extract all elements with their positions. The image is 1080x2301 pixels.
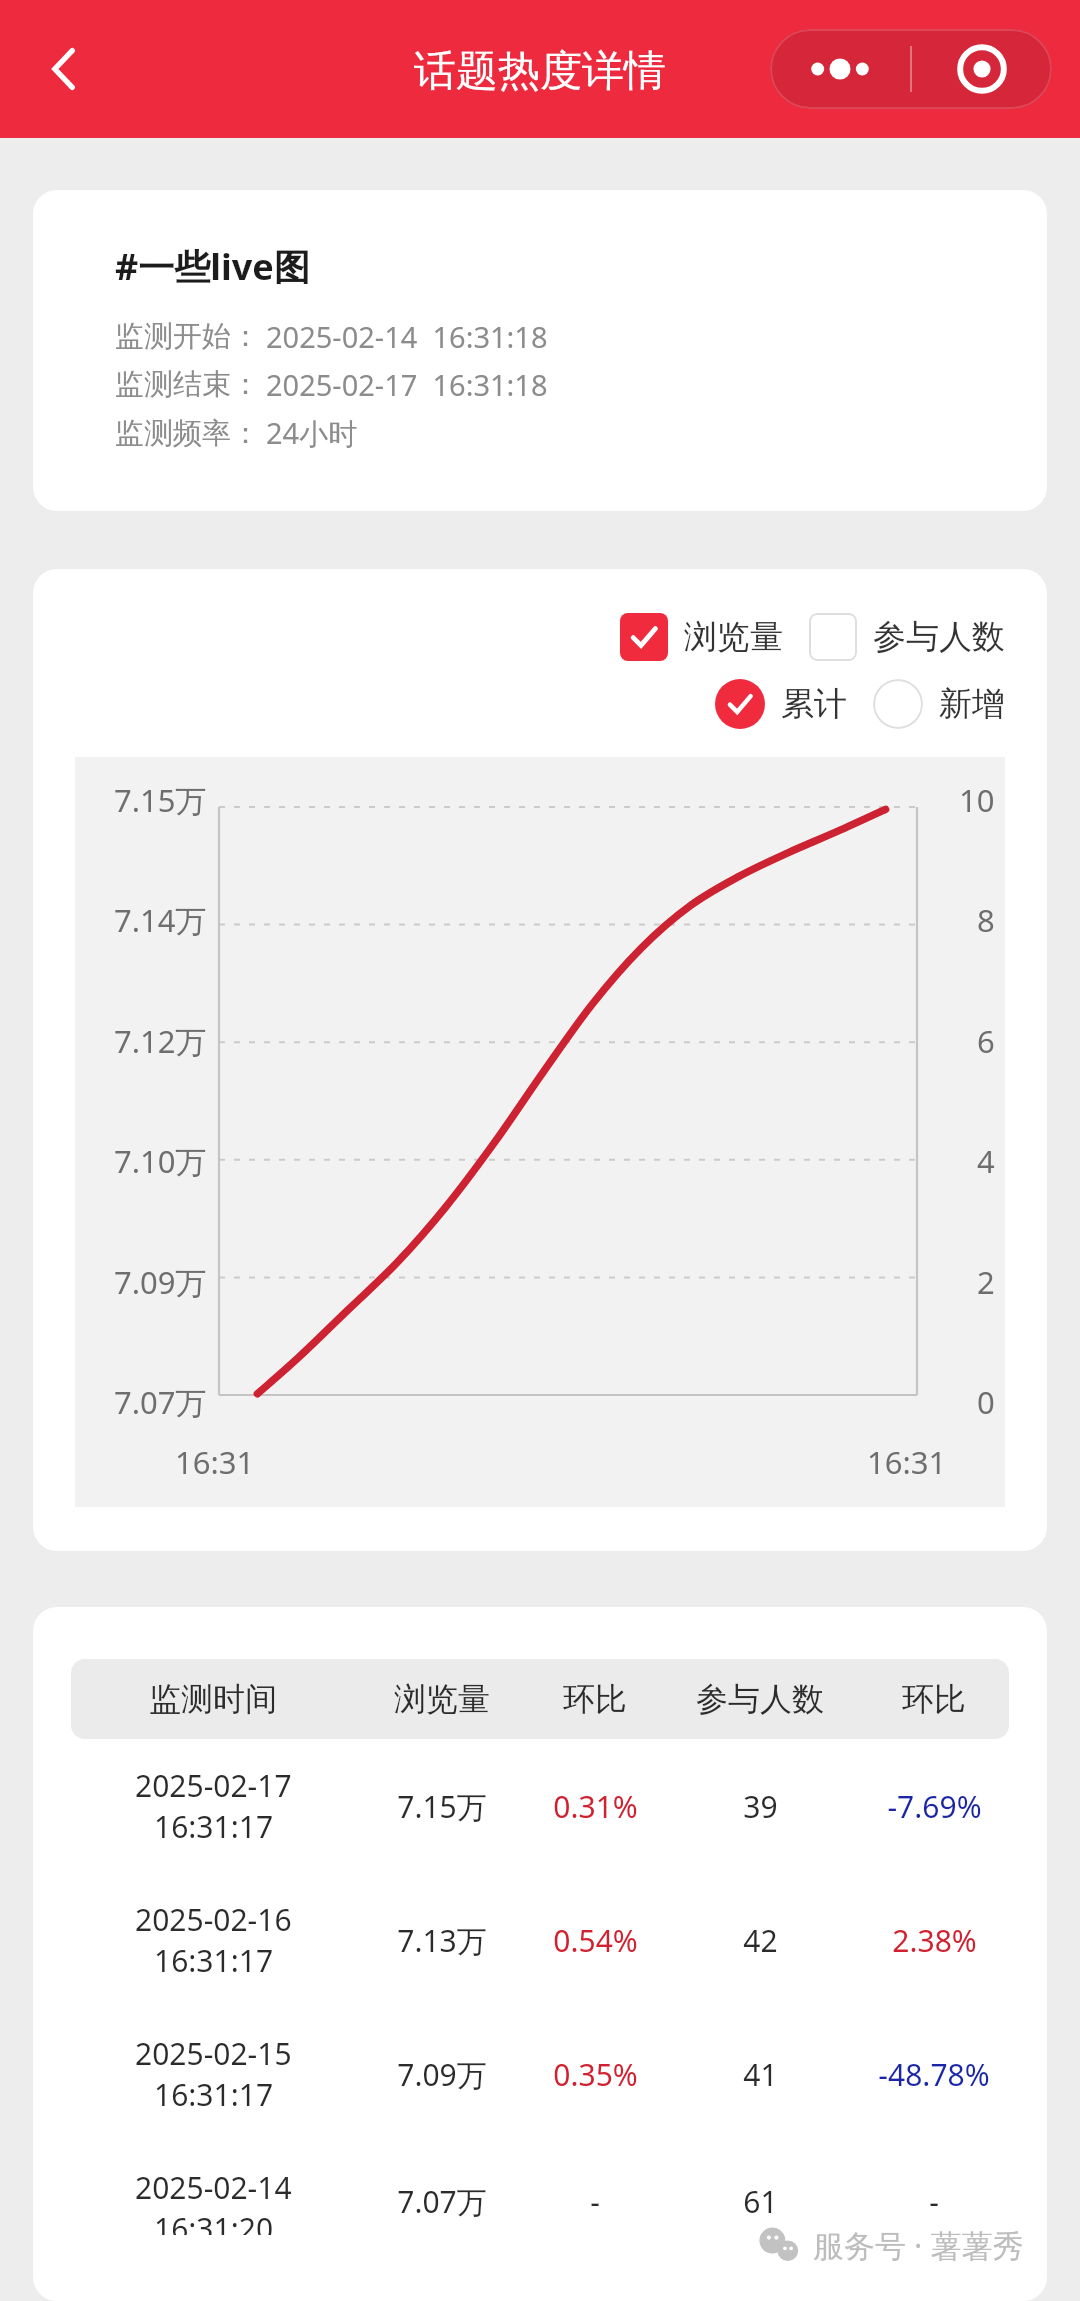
staticText: 7.09万 (114, 1261, 207, 1303)
staticText: 16:31:17 (154, 2074, 274, 2115)
staticText: 新增 (939, 683, 1005, 725)
staticText: 监测结束： (115, 366, 260, 403)
button[interactable]: More options (770, 29, 1052, 109)
staticText: 7.12万 (114, 1020, 207, 1062)
staticText: 累计 (781, 683, 847, 725)
staticText: 0.31% (553, 1786, 638, 1827)
staticText: 7.07万 (397, 2181, 487, 2222)
staticText: 39 (743, 1786, 778, 1827)
staticText: 2 (977, 1261, 995, 1303)
button[interactable]: 浏览量 (620, 613, 783, 661)
staticText: 16:31:17 (154, 1806, 274, 1847)
staticText: 0.54% (553, 1920, 638, 1961)
button[interactable]: 参与人数 (809, 613, 1005, 661)
staticText: 6 (977, 1020, 995, 1062)
staticText: 2025-02-16 (135, 1899, 292, 1940)
staticText: 16:31 (867, 1441, 947, 1483)
button[interactable]: 2025-02-15 (71, 2007, 1009, 2141)
staticText: 0.35% (553, 2054, 638, 2095)
staticText: 2025-02-15 (135, 2033, 292, 2074)
staticText: 7.09万 (397, 2054, 487, 2095)
button[interactable]: 累计 (715, 679, 847, 729)
staticText: 42 (743, 1920, 778, 1961)
staticText: 16:31:17 (154, 1940, 274, 1981)
staticText: 7.10万 (114, 1140, 207, 1182)
staticText: 4 (977, 1140, 995, 1182)
staticText: 参与人数 (873, 616, 1005, 658)
staticText: 环比 (563, 1679, 627, 1719)
staticText: 16:31 (175, 1441, 255, 1483)
staticText: -48.78% (878, 2054, 990, 2095)
button[interactable]: 新增 (873, 679, 1005, 729)
button[interactable]: 2025-02-16 (71, 1873, 1009, 2007)
staticText: 2025-02-14 (135, 2167, 292, 2208)
staticText: 7.15万 (397, 1786, 487, 1827)
staticText: 8 (977, 899, 995, 941)
staticText: - (929, 2181, 939, 2222)
button[interactable]: 2025-02-17 (71, 1739, 1009, 1873)
staticText: 0 (977, 1381, 995, 1423)
staticText: 话题热度详情 (414, 45, 666, 98)
staticText: 24小时 (266, 413, 358, 453)
button[interactable]: #一些live图 (33, 190, 1047, 511)
staticText: 监测开始： (115, 318, 260, 355)
staticText: - (590, 2181, 600, 2222)
staticText: 41 (743, 2054, 778, 2095)
staticText: 2025-02-17 (135, 1765, 292, 1806)
staticText: 服务号 · 薯薯秀 (813, 2224, 1024, 2266)
staticText: 2025-02-17 16:31:18 (266, 365, 548, 404)
button[interactable]: 2025-02-14 (71, 2141, 1009, 2261)
staticText: 参与人数 (696, 1679, 824, 1719)
staticText: 监测时间 (149, 1679, 277, 1719)
staticText: #一些live图 (115, 242, 310, 291)
button[interactable]: Back (16, 21, 112, 117)
staticText: 7.14万 (114, 899, 207, 941)
staticText: 16:31:20 (154, 2208, 274, 2235)
staticText: 10 (959, 779, 995, 821)
staticText: 环比 (902, 1679, 966, 1719)
staticText: 2.38% (892, 1920, 977, 1961)
staticText: -7.69% (887, 1786, 982, 1827)
staticText: 浏览量 (684, 616, 783, 658)
staticText: 浏览量 (394, 1679, 490, 1719)
staticText: 监测频率： (115, 415, 260, 452)
staticText: 7.07万 (114, 1381, 207, 1423)
staticText: 2025-02-14 16:31:18 (266, 317, 548, 356)
staticText: 61 (743, 2181, 778, 2222)
staticText: 7.15万 (114, 779, 207, 821)
staticText: 7.13万 (397, 1920, 487, 1961)
